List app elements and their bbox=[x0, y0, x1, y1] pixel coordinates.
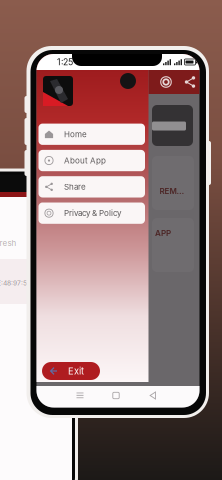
staticText: resh bbox=[0, 238, 16, 248]
staticText: TE:48:97:5 bbox=[0, 279, 27, 287]
button[interactable]: Home bbox=[106, 386, 126, 404]
staticText: 1:25 bbox=[57, 57, 73, 67]
staticText: About App bbox=[64, 156, 106, 165]
button[interactable]: Privacy & Policy bbox=[38, 202, 145, 224]
button[interactable]: Recents bbox=[70, 386, 90, 404]
button[interactable]: Share bbox=[38, 176, 145, 197]
staticText: Share bbox=[64, 182, 86, 192]
staticText: REM… bbox=[159, 186, 184, 196]
button[interactable]: Settings bbox=[155, 71, 177, 93]
button[interactable]: Back bbox=[143, 386, 163, 404]
staticText: Exit bbox=[68, 365, 84, 377]
button[interactable]: Home bbox=[38, 124, 145, 145]
staticText: APP bbox=[155, 228, 171, 238]
staticText: Home bbox=[64, 129, 87, 139]
staticText: Privacy & Policy bbox=[64, 208, 121, 218]
button[interactable]: About App bbox=[38, 150, 145, 171]
button[interactable]: Share bbox=[179, 71, 201, 93]
button[interactable]: Exit bbox=[42, 362, 100, 380]
